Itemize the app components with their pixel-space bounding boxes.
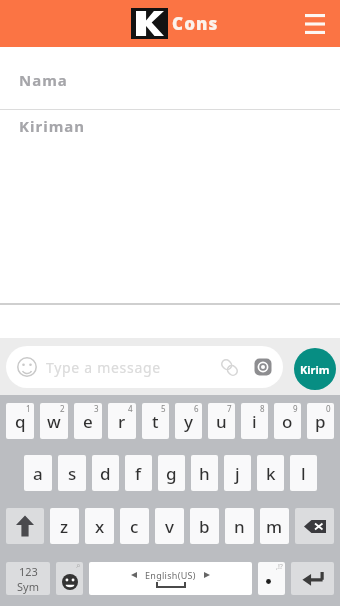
staticText: 123 xyxy=(19,564,38,579)
staticText: m xyxy=(266,515,283,538)
button[interactable]: z xyxy=(50,508,79,544)
button[interactable]: Kiriman xyxy=(0,113,340,138)
button[interactable]: Nama xyxy=(0,50,340,109)
button[interactable]: y xyxy=(175,403,202,439)
button[interactable]: Symbols xyxy=(6,562,50,595)
button[interactable]: Space xyxy=(89,562,252,595)
staticText: j xyxy=(235,462,240,485)
staticText: 1 xyxy=(26,403,31,414)
button[interactable]: Backspace xyxy=(295,508,334,544)
staticText: b xyxy=(199,515,210,538)
button[interactable]: w xyxy=(40,403,68,439)
staticText: i xyxy=(252,410,257,433)
staticText: q xyxy=(15,410,26,433)
button[interactable]: Camera xyxy=(253,357,273,377)
button[interactable]: Attach file xyxy=(217,355,241,379)
button[interactable]: r xyxy=(108,403,136,439)
button[interactable]: a xyxy=(24,455,52,491)
button[interactable]: j xyxy=(224,455,251,491)
staticText: Type a message xyxy=(46,358,161,377)
staticText: 6 xyxy=(194,403,199,414)
button[interactable]: b xyxy=(190,508,219,544)
staticText: Sym xyxy=(17,579,39,594)
staticText: e xyxy=(83,410,93,433)
staticText: 0 xyxy=(326,403,331,414)
button[interactable]: q xyxy=(6,403,34,439)
button[interactable]: p xyxy=(307,403,334,439)
staticText: l xyxy=(301,462,306,485)
staticText: Nama xyxy=(19,70,68,90)
button[interactable]: c xyxy=(120,508,149,544)
staticText: p xyxy=(315,410,326,433)
staticText: English(US) xyxy=(145,569,196,581)
button[interactable]: x xyxy=(85,508,114,544)
staticText: 9 xyxy=(293,403,298,414)
button[interactable]: m xyxy=(260,508,289,544)
button[interactable]: Menu xyxy=(305,14,325,34)
staticText: 3 xyxy=(94,403,99,414)
staticText: Kiriman xyxy=(19,116,85,136)
staticText: u xyxy=(216,410,227,433)
button[interactable]: d xyxy=(92,455,119,491)
staticText: h xyxy=(199,462,210,485)
button[interactable]: u xyxy=(208,403,235,439)
staticText: t xyxy=(152,410,159,433)
staticText: 2 xyxy=(60,403,65,414)
staticText: r xyxy=(118,410,126,433)
staticText: n xyxy=(234,515,245,538)
button[interactable]: l xyxy=(290,455,317,491)
staticText: g xyxy=(166,462,177,485)
button[interactable]: g xyxy=(158,455,185,491)
staticText: Cons xyxy=(172,12,219,35)
button[interactable]: t xyxy=(142,403,169,439)
button[interactable]: Kirim xyxy=(294,348,336,390)
staticText: 4 xyxy=(128,403,133,414)
staticText: f xyxy=(135,462,142,485)
button[interactable]: h xyxy=(191,455,218,491)
button[interactable]: f xyxy=(125,455,152,491)
staticText: k xyxy=(266,462,276,485)
staticText: s xyxy=(68,462,77,485)
button[interactable]: o xyxy=(274,403,301,439)
staticText: d xyxy=(100,462,111,485)
staticText: 7 xyxy=(227,403,232,414)
staticText: z xyxy=(60,515,69,538)
button[interactable]: v xyxy=(155,508,184,544)
staticText: 5 xyxy=(161,403,166,414)
button[interactable]: e xyxy=(74,403,102,439)
button[interactable]: n xyxy=(225,508,254,544)
button[interactable]: i xyxy=(241,403,268,439)
button[interactable]: Shift xyxy=(6,508,44,544)
staticText: 8 xyxy=(260,403,265,414)
button[interactable]: Type a message xyxy=(6,346,283,388)
staticText: o xyxy=(282,410,293,433)
staticText: ,!? xyxy=(276,562,283,572)
staticText: ⌕ xyxy=(76,562,81,570)
button[interactable]: Emoji xyxy=(56,562,83,595)
button[interactable]: Period xyxy=(258,562,285,595)
button[interactable]: Enter xyxy=(291,562,334,595)
staticText: w xyxy=(47,410,61,433)
staticText: c xyxy=(130,515,139,538)
staticText: Kirim xyxy=(300,362,330,377)
staticText: y xyxy=(184,410,193,433)
button[interactable]: s xyxy=(58,455,86,491)
staticText: x xyxy=(95,515,105,538)
button[interactable]: k xyxy=(257,455,284,491)
staticText: v xyxy=(165,515,174,538)
staticText: a xyxy=(33,462,43,485)
